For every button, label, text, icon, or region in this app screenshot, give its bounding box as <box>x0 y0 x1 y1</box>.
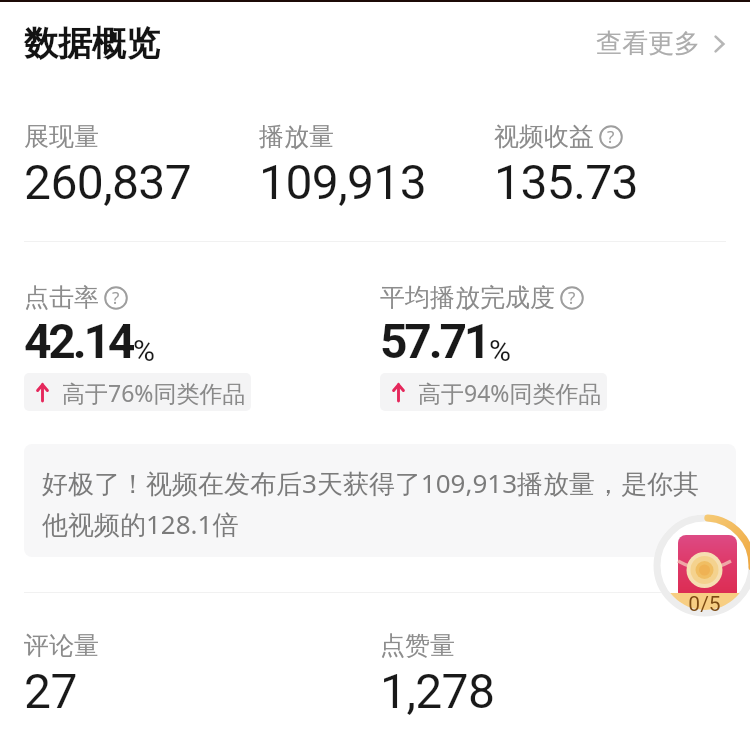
staticText: 点赞量 <box>380 630 455 661</box>
staticText: ? <box>607 125 615 148</box>
staticText: % <box>133 333 155 368</box>
staticText: 评论量 <box>24 630 99 661</box>
staticText: ? <box>112 286 120 309</box>
staticText: 数据概览 <box>24 22 160 65</box>
staticText: 高于76%同类作品 <box>62 377 246 408</box>
staticText: 视频收益 <box>494 121 594 152</box>
button[interactable]: 高于94%同类作品 <box>380 373 607 411</box>
button[interactable]: 点赞量 <box>380 633 495 689</box>
staticText: 点击率 <box>24 282 99 313</box>
staticText: 高于94%同类作品 <box>418 377 602 408</box>
staticText: ? <box>568 286 576 309</box>
staticText: 查看更多 <box>596 27 700 60</box>
staticText: 109,913 <box>259 154 427 210</box>
button[interactable]: Red packet reward, 0 of 5 <box>653 514 750 617</box>
staticText: % <box>489 333 511 368</box>
button[interactable]: 高于76%同类作品 <box>24 373 251 411</box>
staticText: 57.71 <box>380 313 489 369</box>
staticText: 260,837 <box>24 154 192 210</box>
staticText: 好极了！视频在发布后3天获得了109,913播放量，是你其他视频的128.1倍 <box>42 465 720 542</box>
staticText: 1,278 <box>380 663 495 719</box>
staticText: 27 <box>24 663 77 719</box>
button[interactable]: 评论量 <box>24 633 99 689</box>
button[interactable]: 展现量 <box>24 124 192 180</box>
staticText: 42.14 <box>24 313 133 369</box>
button[interactable]: 视频收益 <box>494 124 638 180</box>
button[interactable]: 查看更多 <box>586 22 745 65</box>
staticText: 平均播放完成度 <box>380 282 555 313</box>
staticText: 展现量 <box>24 121 99 152</box>
staticText: 播放量 <box>259 121 334 152</box>
staticText: 135.73 <box>494 154 638 210</box>
button[interactable]: 播放量 <box>259 124 427 180</box>
staticText: 0/5 <box>686 592 723 617</box>
